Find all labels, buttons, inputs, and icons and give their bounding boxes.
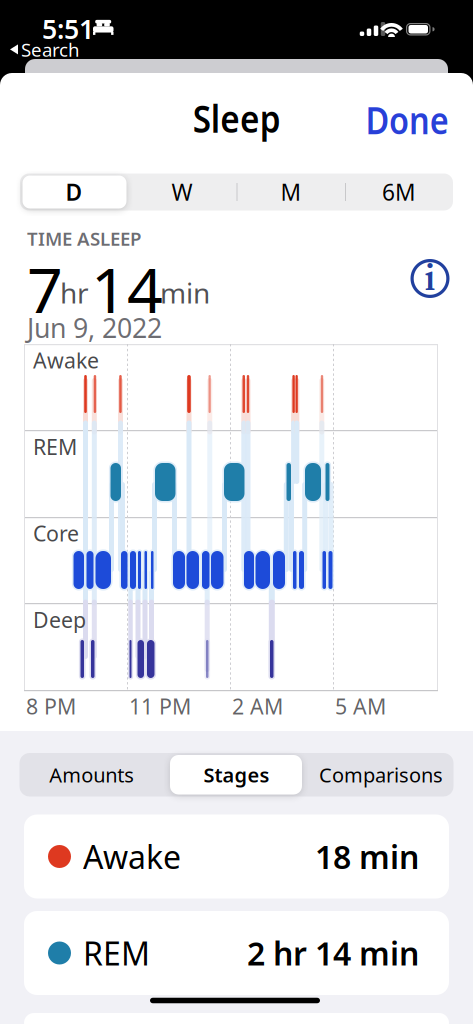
button[interactable]: D [20,173,128,210]
button[interactable]: 6M [345,173,453,210]
staticText: D [65,177,82,207]
staticText: Awake [83,835,181,878]
staticText: M [280,177,301,207]
staticText: 5 AM [335,692,386,720]
button[interactable]: REM [24,911,449,995]
staticText: 14 [91,247,163,330]
staticText: W [171,177,192,207]
button[interactable]: Done [353,95,449,145]
staticText: Stages [203,761,269,788]
staticText: min [160,274,210,311]
button[interactable]: Awake [24,814,449,898]
staticText: 18 min [315,835,419,878]
staticText: REM [83,932,150,974]
staticText: TIME ASLEEP [27,226,141,251]
button[interactable]: About Time Asleep [410,259,449,298]
staticText: 5:51 [42,11,94,46]
staticText: Deep [33,605,86,634]
button[interactable]: Back to Search [10,37,80,62]
button[interactable]: Stages [164,753,309,796]
staticText: i [424,253,435,302]
button[interactable]: Comparisons [309,753,453,796]
staticText: 6M [382,177,416,207]
staticText: 7 [27,247,63,330]
button[interactable]: W [128,173,236,210]
staticText: REM [33,432,77,461]
staticText: Core [33,519,79,547]
staticText: Amounts [49,761,134,788]
staticText: Comparisons [319,761,443,788]
button[interactable]: M [237,173,345,210]
staticText: 2 AM [232,692,283,720]
staticText: 11 PM [129,692,191,720]
staticText: hr [60,274,89,311]
staticText: Done [353,95,449,145]
staticText: Sleep [185,92,287,143]
button[interactable]: Amounts [19,753,164,796]
staticText: 8 PM [26,692,76,720]
staticText: 2 hr 14 min [247,932,419,974]
staticText: Jun 9, 2022 [27,310,162,345]
staticText: Awake [33,346,99,374]
staticText: Search [21,37,80,62]
